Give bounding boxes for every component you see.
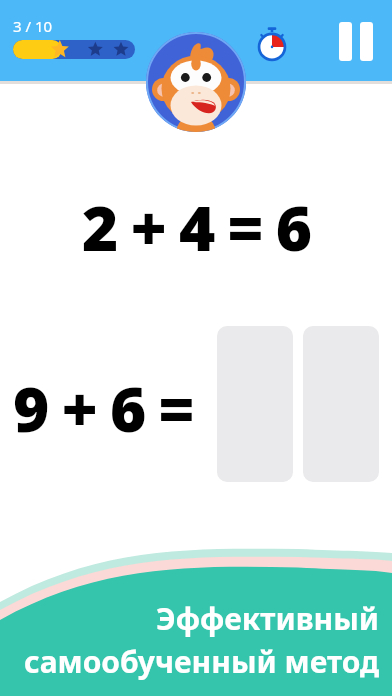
staticText: Эффективный <box>156 598 380 639</box>
staticText: 9 + 6 = <box>13 366 193 444</box>
staticText: 3 / 10 <box>13 16 53 36</box>
staticText: 2 + 4 = 6 <box>82 185 311 267</box>
button[interactable]: Avatar <box>146 32 246 132</box>
staticText: самообученный метод <box>24 641 380 682</box>
button[interactable]: Pause <box>336 21 376 61</box>
button[interactable]: 3 / 10 <box>13 16 135 59</box>
button[interactable]: Timer <box>254 26 290 62</box>
